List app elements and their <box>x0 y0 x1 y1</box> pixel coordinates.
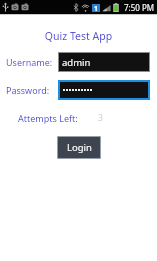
staticText: 3 <box>98 112 103 124</box>
staticText: Username: <box>6 56 53 68</box>
staticText: Password: <box>6 84 50 96</box>
staticText: 1 <box>94 4 98 12</box>
button[interactable]: admin <box>59 53 149 71</box>
staticText: Login <box>67 141 92 154</box>
staticText: Attempts Left: <box>18 112 78 124</box>
staticText: 7:50 PM <box>124 2 155 13</box>
staticText: Quiz Test App <box>0 29 157 43</box>
button[interactable]: Login <box>57 136 101 159</box>
staticText: admin <box>62 56 91 69</box>
button[interactable] <box>60 82 148 98</box>
